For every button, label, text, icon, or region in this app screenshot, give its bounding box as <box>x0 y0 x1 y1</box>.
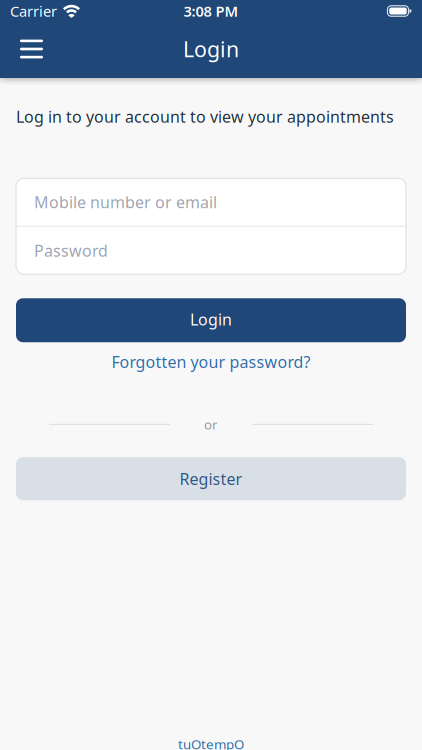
staticText: Log in to your account to view your appo… <box>16 106 394 127</box>
staticText: Forgotten your password? <box>111 351 310 372</box>
button[interactable] <box>0 42 43 60</box>
staticText: Password <box>34 240 108 261</box>
staticText: Register <box>179 468 242 489</box>
staticText: tuOtempO <box>178 735 244 750</box>
staticText: Mobile number or email <box>34 191 217 213</box>
button[interactable]: Password <box>16 227 406 274</box>
staticText: Login <box>183 35 239 63</box>
staticText: Login <box>190 309 232 330</box>
button[interactable]: Mobile number or email <box>16 178 406 226</box>
button[interactable]: tuOtempO <box>178 732 244 750</box>
button[interactable]: Login <box>16 298 406 342</box>
staticText: Carrier <box>10 1 57 21</box>
staticText: or <box>204 415 218 433</box>
staticText: 3:08 PM <box>183 1 238 21</box>
button[interactable]: Forgotten your password? <box>111 351 310 372</box>
button[interactable]: Register <box>16 457 406 500</box>
